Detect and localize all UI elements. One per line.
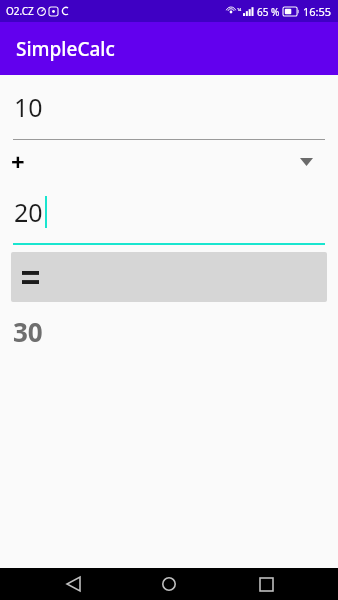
staticText: O2.CZ (6, 4, 34, 18)
button[interactable]: Operation: plus (0, 140, 338, 183)
staticText: 10 (14, 90, 43, 124)
button[interactable]: 20 (0, 183, 338, 245)
staticText: 30 (13, 314, 43, 349)
staticText: 20 (14, 195, 43, 229)
staticText: 16:55 (303, 4, 332, 19)
button[interactable]: Back (49, 568, 97, 600)
button[interactable]: Recent apps (242, 568, 290, 600)
button[interactable]: Equals (11, 252, 327, 302)
staticText: 65 % (257, 5, 280, 19)
staticText: SimpleCalc (16, 36, 115, 62)
staticText: ¹⁴ (237, 8, 242, 16)
button[interactable]: 10 (0, 78, 338, 140)
staticText: + (11, 145, 25, 178)
button[interactable]: Home (145, 568, 193, 600)
